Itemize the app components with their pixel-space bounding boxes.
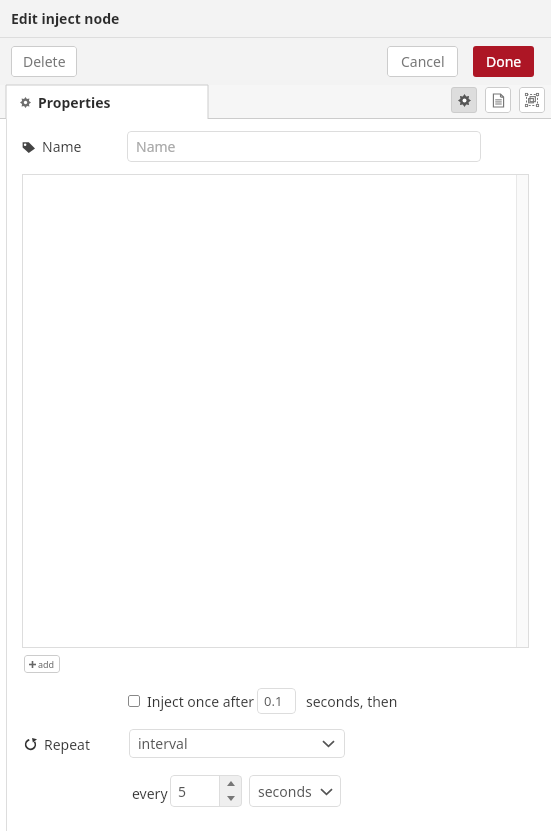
staticText: Name [136,137,176,156]
staticText: Inject once after [147,692,255,711]
staticText: 5 [178,782,187,801]
staticText: Repeat [44,735,91,754]
button[interactable]: Done [473,46,534,77]
button[interactable]: Increase [220,776,242,791]
staticText: Done [486,52,522,71]
button[interactable]: Decrease [220,791,242,806]
staticText: interval [138,734,188,753]
staticText: Delete [23,52,66,71]
button[interactable]: Properties view [451,87,477,113]
staticText: every [132,784,168,803]
button[interactable]: interval [129,729,345,758]
button[interactable]: Name [127,131,481,162]
button[interactable]: Description [485,87,511,113]
button[interactable]: Cancel [387,46,458,77]
staticText: seconds, then [306,692,398,711]
button[interactable]: Properties [6,85,208,119]
staticText: seconds [258,782,312,801]
button[interactable]: seconds [249,775,341,807]
button[interactable]: Appearance [519,87,545,113]
button[interactable]: Delete [11,46,77,77]
button[interactable]: 5 [170,775,242,807]
button[interactable]: 0.1 [257,688,296,714]
staticText: 0.1 [264,692,283,710]
button[interactable]: Inject once after [128,695,140,707]
staticText: Edit inject node [11,9,120,28]
staticText: Properties [38,93,111,112]
button[interactable]: add [24,655,60,673]
staticText: Name [42,137,82,156]
staticText: Cancel [401,52,445,71]
staticText: add [38,658,55,670]
